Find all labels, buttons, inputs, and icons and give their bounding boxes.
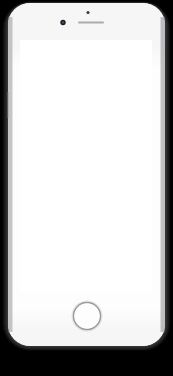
button[interactable]: iPhone device mockup <box>0 0 173 376</box>
